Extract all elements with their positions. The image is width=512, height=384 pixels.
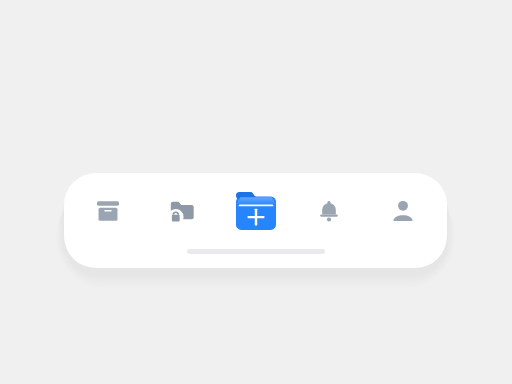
button[interactable]: Locked folder: [152, 179, 212, 243]
button[interactable]: Profile: [373, 179, 433, 243]
button[interactable]: Archive: [78, 179, 138, 243]
button[interactable]: Create new folder: [226, 179, 286, 243]
button[interactable]: Notifications: [299, 179, 359, 243]
